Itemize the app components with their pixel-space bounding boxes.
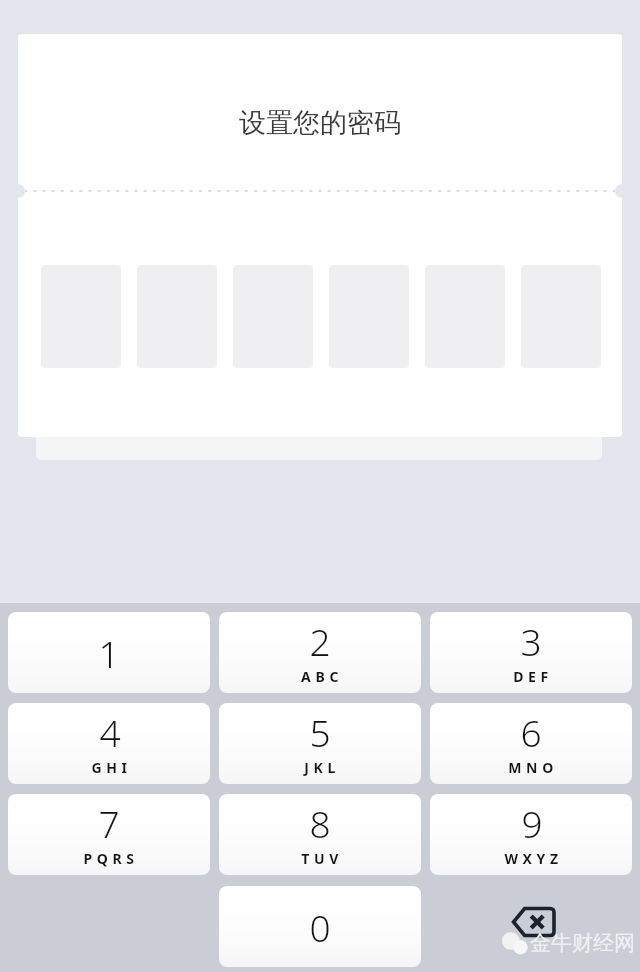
button[interactable]: 7 xyxy=(8,794,210,875)
staticText: 设置您的密码 xyxy=(239,106,401,140)
staticText: M N O xyxy=(508,758,554,777)
staticText: 6 xyxy=(520,707,542,757)
staticText: 金牛财经网 xyxy=(530,930,635,956)
button[interactable]: 3 xyxy=(430,612,632,693)
staticText: G H I xyxy=(91,758,128,777)
staticText: P Q R S xyxy=(83,849,135,868)
staticText: J K L xyxy=(304,758,336,777)
staticText: 9 xyxy=(521,798,543,848)
staticText: 2 xyxy=(309,616,331,666)
staticText: 5 xyxy=(309,707,331,757)
button[interactable]: 2 xyxy=(219,612,421,693)
button[interactable]: Delete xyxy=(505,898,561,946)
staticText: 0 xyxy=(309,902,331,952)
staticText: W X Y Z xyxy=(504,849,559,868)
staticText: A B C xyxy=(301,667,339,686)
button[interactable]: 9 xyxy=(430,794,632,875)
button[interactable]: 8 xyxy=(219,794,421,875)
staticText: 1 xyxy=(98,628,120,678)
staticText: 4 xyxy=(99,707,121,757)
staticText: 3 xyxy=(520,616,542,666)
staticText: 7 xyxy=(98,798,120,848)
button[interactable]: 6 xyxy=(430,703,632,784)
button[interactable]: 5 xyxy=(219,703,421,784)
staticText: D E F xyxy=(513,667,549,686)
staticText: 8 xyxy=(309,798,331,848)
button[interactable]: 1 xyxy=(8,612,210,693)
staticText: T U V xyxy=(301,849,339,868)
button[interactable]: 0 xyxy=(219,886,421,967)
button[interactable]: 4 xyxy=(8,703,210,784)
